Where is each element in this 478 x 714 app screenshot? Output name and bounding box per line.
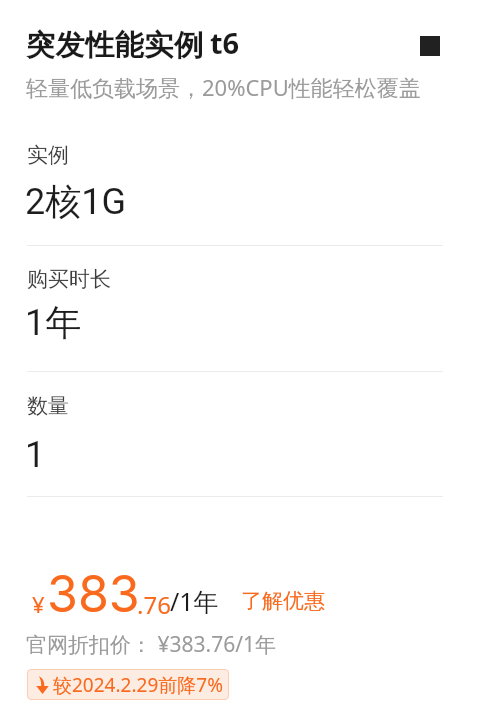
- staticText: 实例: [27, 142, 69, 168]
- staticText: 突发性能实例: [26, 27, 204, 64]
- staticText: 较2024.2.29前降7%: [53, 672, 223, 698]
- staticText: /1年: [170, 584, 219, 618]
- staticText: ¥: [32, 589, 45, 619]
- button[interactable]: 了解优惠: [241, 588, 325, 614]
- staticText: .76: [137, 588, 171, 621]
- button[interactable]: 突发性能实例: [26, 27, 204, 64]
- staticText: t6: [210, 23, 240, 62]
- staticText: 轻量低负载场景，20%CPU性能轻松覆盖: [26, 72, 421, 102]
- staticText: 2核1G: [25, 179, 126, 224]
- staticText: 383: [47, 564, 140, 624]
- staticText: 官网折扣价： ¥383.76/1年: [26, 630, 276, 659]
- staticText: 数量: [27, 393, 69, 419]
- staticText: 了解优惠: [241, 588, 325, 614]
- staticText: 1年: [25, 300, 82, 345]
- staticText: 购买时长: [27, 266, 111, 292]
- button[interactable]: 较2024.2.29前降7%: [27, 669, 229, 700]
- staticText: 1: [25, 434, 46, 476]
